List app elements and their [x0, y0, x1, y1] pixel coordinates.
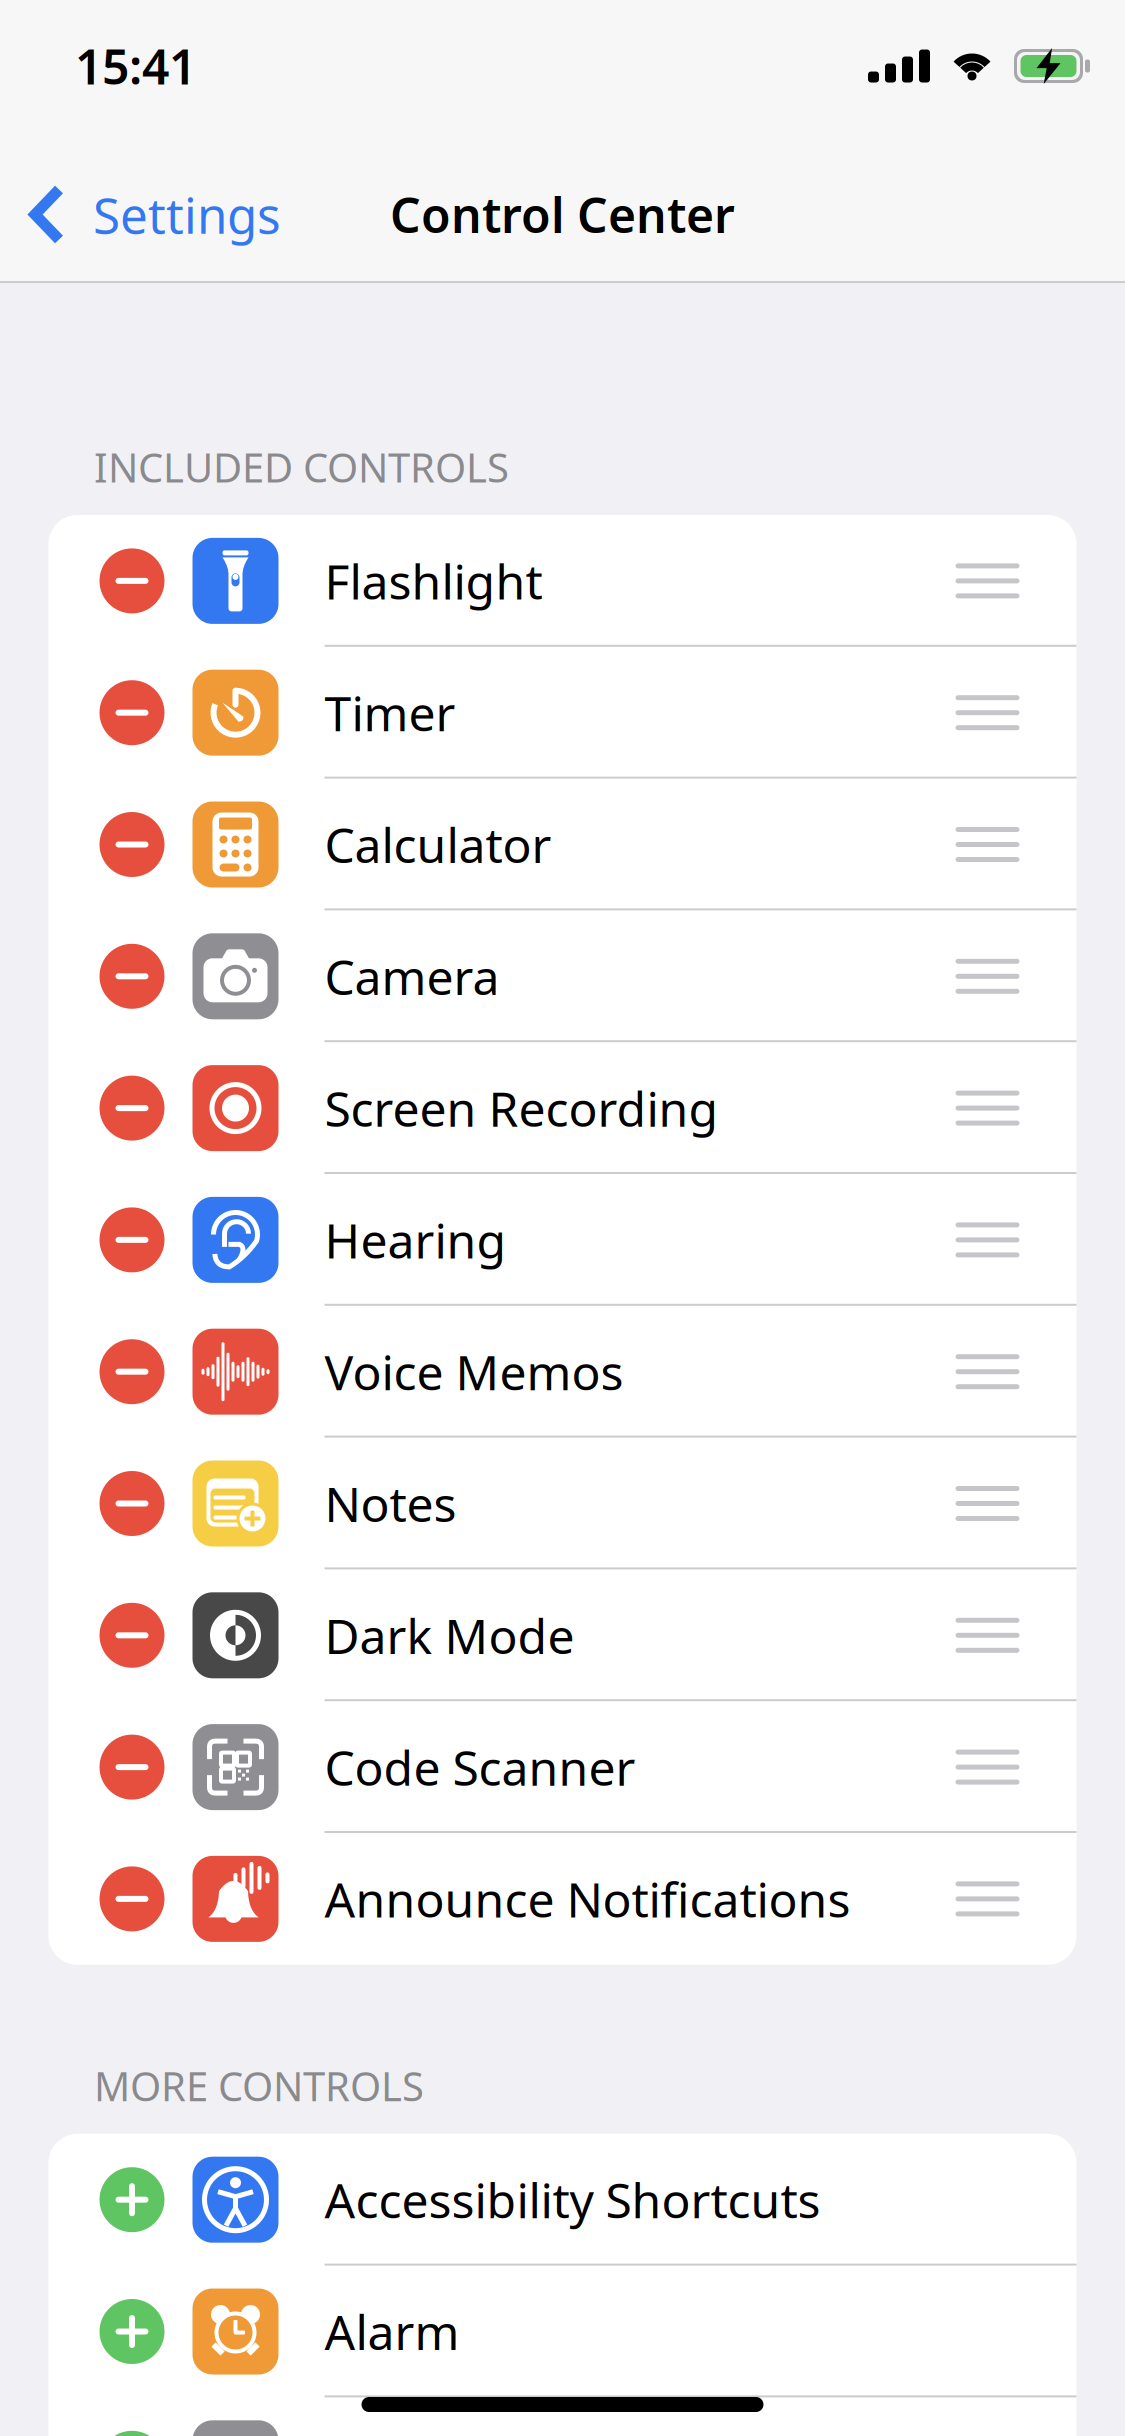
staticText: Hearing	[324, 1208, 506, 1272]
staticText: Calculator	[324, 813, 551, 876]
staticText: Dark Mode	[324, 1603, 574, 1667]
button[interactable]: Hearing	[48, 1174, 1076, 1306]
staticText: Code Scanner	[324, 1735, 635, 1799]
button[interactable]: Calculator	[48, 779, 1076, 910]
button[interactable]: Apple TV Remote	[48, 2397, 1076, 2436]
staticText: Alarm	[324, 2300, 459, 2363]
button[interactable]: Code Scanner	[48, 1701, 1076, 1833]
button[interactable]: Notes	[48, 1438, 1076, 1569]
button[interactable]: Flashlight	[48, 515, 1076, 647]
staticText: INCLUDED CONTROLS	[94, 440, 509, 493]
staticText: Camera	[324, 944, 499, 1008]
staticText: Timer	[324, 681, 455, 744]
staticText: Voice Memos	[324, 1340, 623, 1403]
staticText: 15:41	[75, 34, 196, 98]
staticText: Notes	[324, 1472, 456, 1535]
button[interactable]: Dark Mode	[48, 1569, 1076, 1701]
staticText: Settings	[93, 182, 281, 247]
button[interactable]: Camera	[48, 910, 1076, 1042]
staticText: Announce Notifications	[324, 1867, 850, 1931]
button[interactable]: Timer	[48, 647, 1076, 779]
button[interactable]: Accessibility Shortcuts	[48, 2134, 1076, 2266]
staticText: Screen Recording	[324, 1076, 718, 1140]
button[interactable]: Settings	[0, 159, 297, 269]
staticText: MORE CONTROLS	[94, 2059, 424, 2112]
button[interactable]: Voice Memos	[48, 1306, 1076, 1438]
button[interactable]: Announce Notifications	[48, 1833, 1076, 1965]
staticText: Flashlight	[324, 549, 542, 613]
staticText: Control Center	[390, 183, 735, 246]
button[interactable]: Alarm	[48, 2266, 1076, 2397]
button[interactable]: Screen Recording	[48, 1042, 1076, 1174]
staticText: Accessibility Shortcuts	[324, 2168, 820, 2231]
